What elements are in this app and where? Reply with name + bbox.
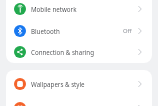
button[interactable]: Wallpapers & style — [6, 73, 152, 94]
button[interactable]: Mobile network — [6, 0, 152, 19]
button[interactable]: Bluetooth — [6, 20, 152, 41]
staticText: Mobile network — [31, 5, 77, 13]
button[interactable]: Widgets & style — [6, 97, 152, 106]
button[interactable]: Connection & sharing — [6, 41, 152, 62]
staticText: Off — [123, 27, 132, 35]
staticText: Connection & sharing — [31, 48, 94, 56]
staticText: Bluetooth — [31, 27, 60, 35]
staticText: Wallpapers & style — [31, 80, 85, 88]
